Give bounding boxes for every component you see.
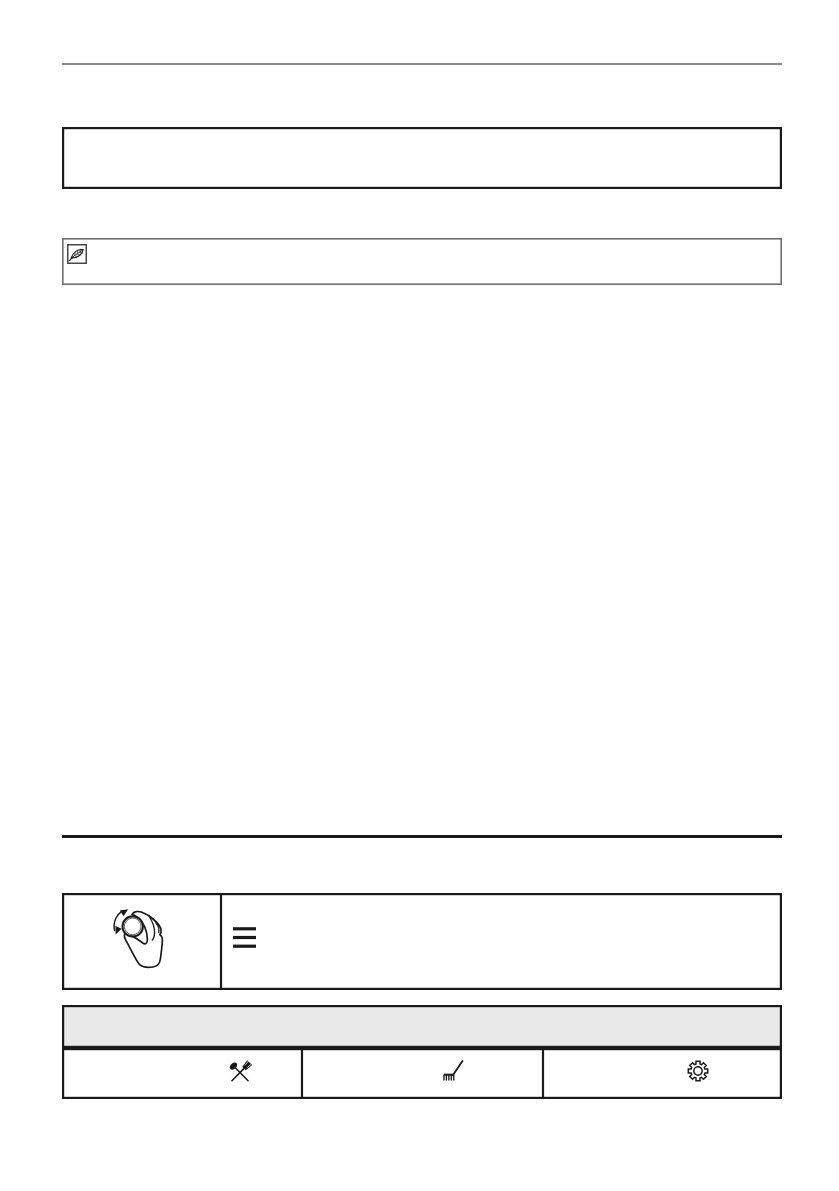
button[interactable]: Menu [221,893,782,990]
button[interactable]: Restaurant [62,1048,302,1099]
button[interactable]: Information panel [62,127,782,189]
button[interactable]: Eco leaf [67,244,87,264]
button[interactable]: Garden [302,1048,543,1099]
button[interactable]: Rotate knob [62,893,221,990]
button[interactable]: Status strip [62,1005,782,1048]
button[interactable]: Settings [543,1048,782,1099]
